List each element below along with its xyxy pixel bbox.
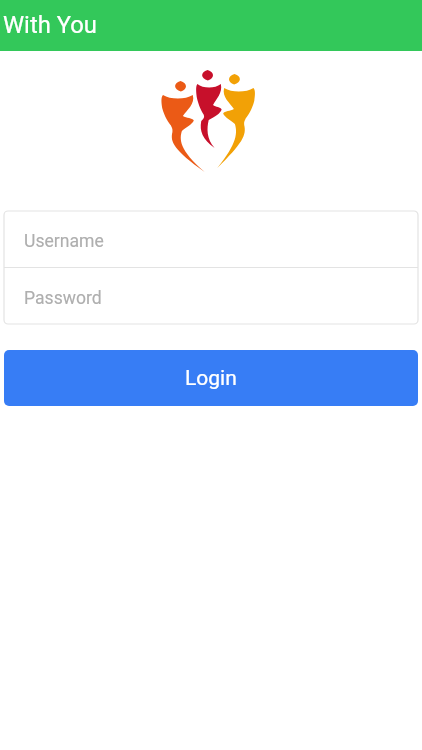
staticText: Password <box>24 288 102 309</box>
button[interactable]: Username <box>4 211 418 267</box>
staticText: With You <box>3 11 97 39</box>
staticText: Login <box>185 366 237 391</box>
button[interactable]: Login <box>4 350 418 406</box>
button[interactable]: Password <box>4 268 418 324</box>
staticText: Username <box>24 231 104 252</box>
